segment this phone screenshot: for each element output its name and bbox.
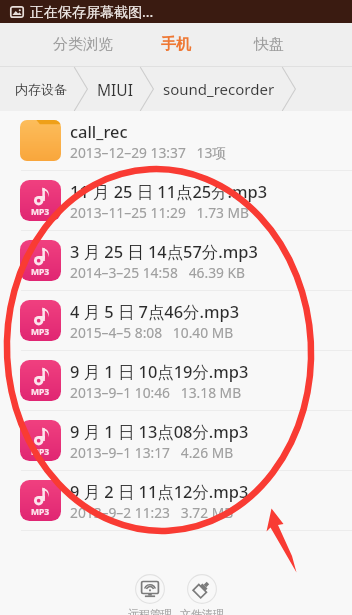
- staticText: 4 月 5 日 7点46分.mp3: [70, 300, 240, 322]
- staticText: 内存设备: [15, 81, 67, 97]
- staticText: MP3: [31, 326, 50, 338]
- button[interactable]: 快盘: [222, 23, 315, 66]
- staticText: 快盘: [254, 35, 284, 54]
- staticText: MP3: [31, 206, 50, 218]
- staticText: 正在保存屏幕截图...: [30, 2, 154, 21]
- button[interactable]: 手机: [129, 23, 222, 66]
- staticText: 手机: [161, 35, 191, 54]
- button[interactable]: 分类浏览: [37, 23, 129, 66]
- staticText: 2015–4–5 8:08 10.40 MB: [70, 323, 234, 342]
- button[interactable]: MP3: [0, 411, 352, 470]
- staticText: 分类浏览: [53, 35, 113, 54]
- staticText: 2013–9–1 13:17 4.26 MB: [70, 443, 234, 462]
- button[interactable]: call_rec: [0, 111, 352, 170]
- staticText: 2013–9–2 11:23 3.72 MB: [70, 503, 234, 522]
- staticText: 9 月 2 日 11点12分.mp3: [70, 480, 249, 502]
- staticText: 9 月 1 日 13点08分.mp3: [70, 420, 249, 442]
- staticText: 文件清理: [180, 607, 224, 615]
- button[interactable]: sound_recorder: [163, 79, 275, 99]
- staticText: MIUI: [97, 79, 133, 100]
- staticText: 2013–12–29 13:37 13项: [70, 143, 227, 162]
- staticText: 2014–3–25 14:58 46.39 KB: [70, 263, 246, 282]
- staticText: call_rec: [70, 120, 128, 142]
- button[interactable]: MP3: [0, 471, 352, 530]
- button[interactable]: MP3: [0, 231, 352, 290]
- button[interactable]: 远程管理: [124, 574, 176, 615]
- staticText: 9 月 1 日 10点19分.mp3: [70, 360, 249, 382]
- staticText: 3 月 25 日 14点57分.mp3: [70, 240, 258, 262]
- staticText: MP3: [31, 446, 50, 458]
- staticText: 远程管理: [128, 607, 172, 615]
- staticText: 2013–11–25 11:29 1.73 MB: [70, 203, 249, 222]
- staticText: 2013–9–1 10:46 13.18 MB: [70, 383, 242, 402]
- button[interactable]: 文件清理: [176, 574, 228, 615]
- staticText: MP3: [31, 266, 50, 278]
- button[interactable]: MP3: [0, 171, 352, 230]
- button[interactable]: 内存设备: [15, 81, 67, 97]
- button[interactable]: MP3: [0, 351, 352, 410]
- staticText: sound_recorder: [163, 79, 275, 99]
- staticText: MP3: [31, 506, 50, 518]
- staticText: 11 月 25 日 11点25分.mp3: [70, 180, 268, 202]
- staticText: MP3: [31, 386, 50, 398]
- button[interactable]: MIUI: [97, 79, 133, 100]
- button[interactable]: MP3: [0, 291, 352, 350]
